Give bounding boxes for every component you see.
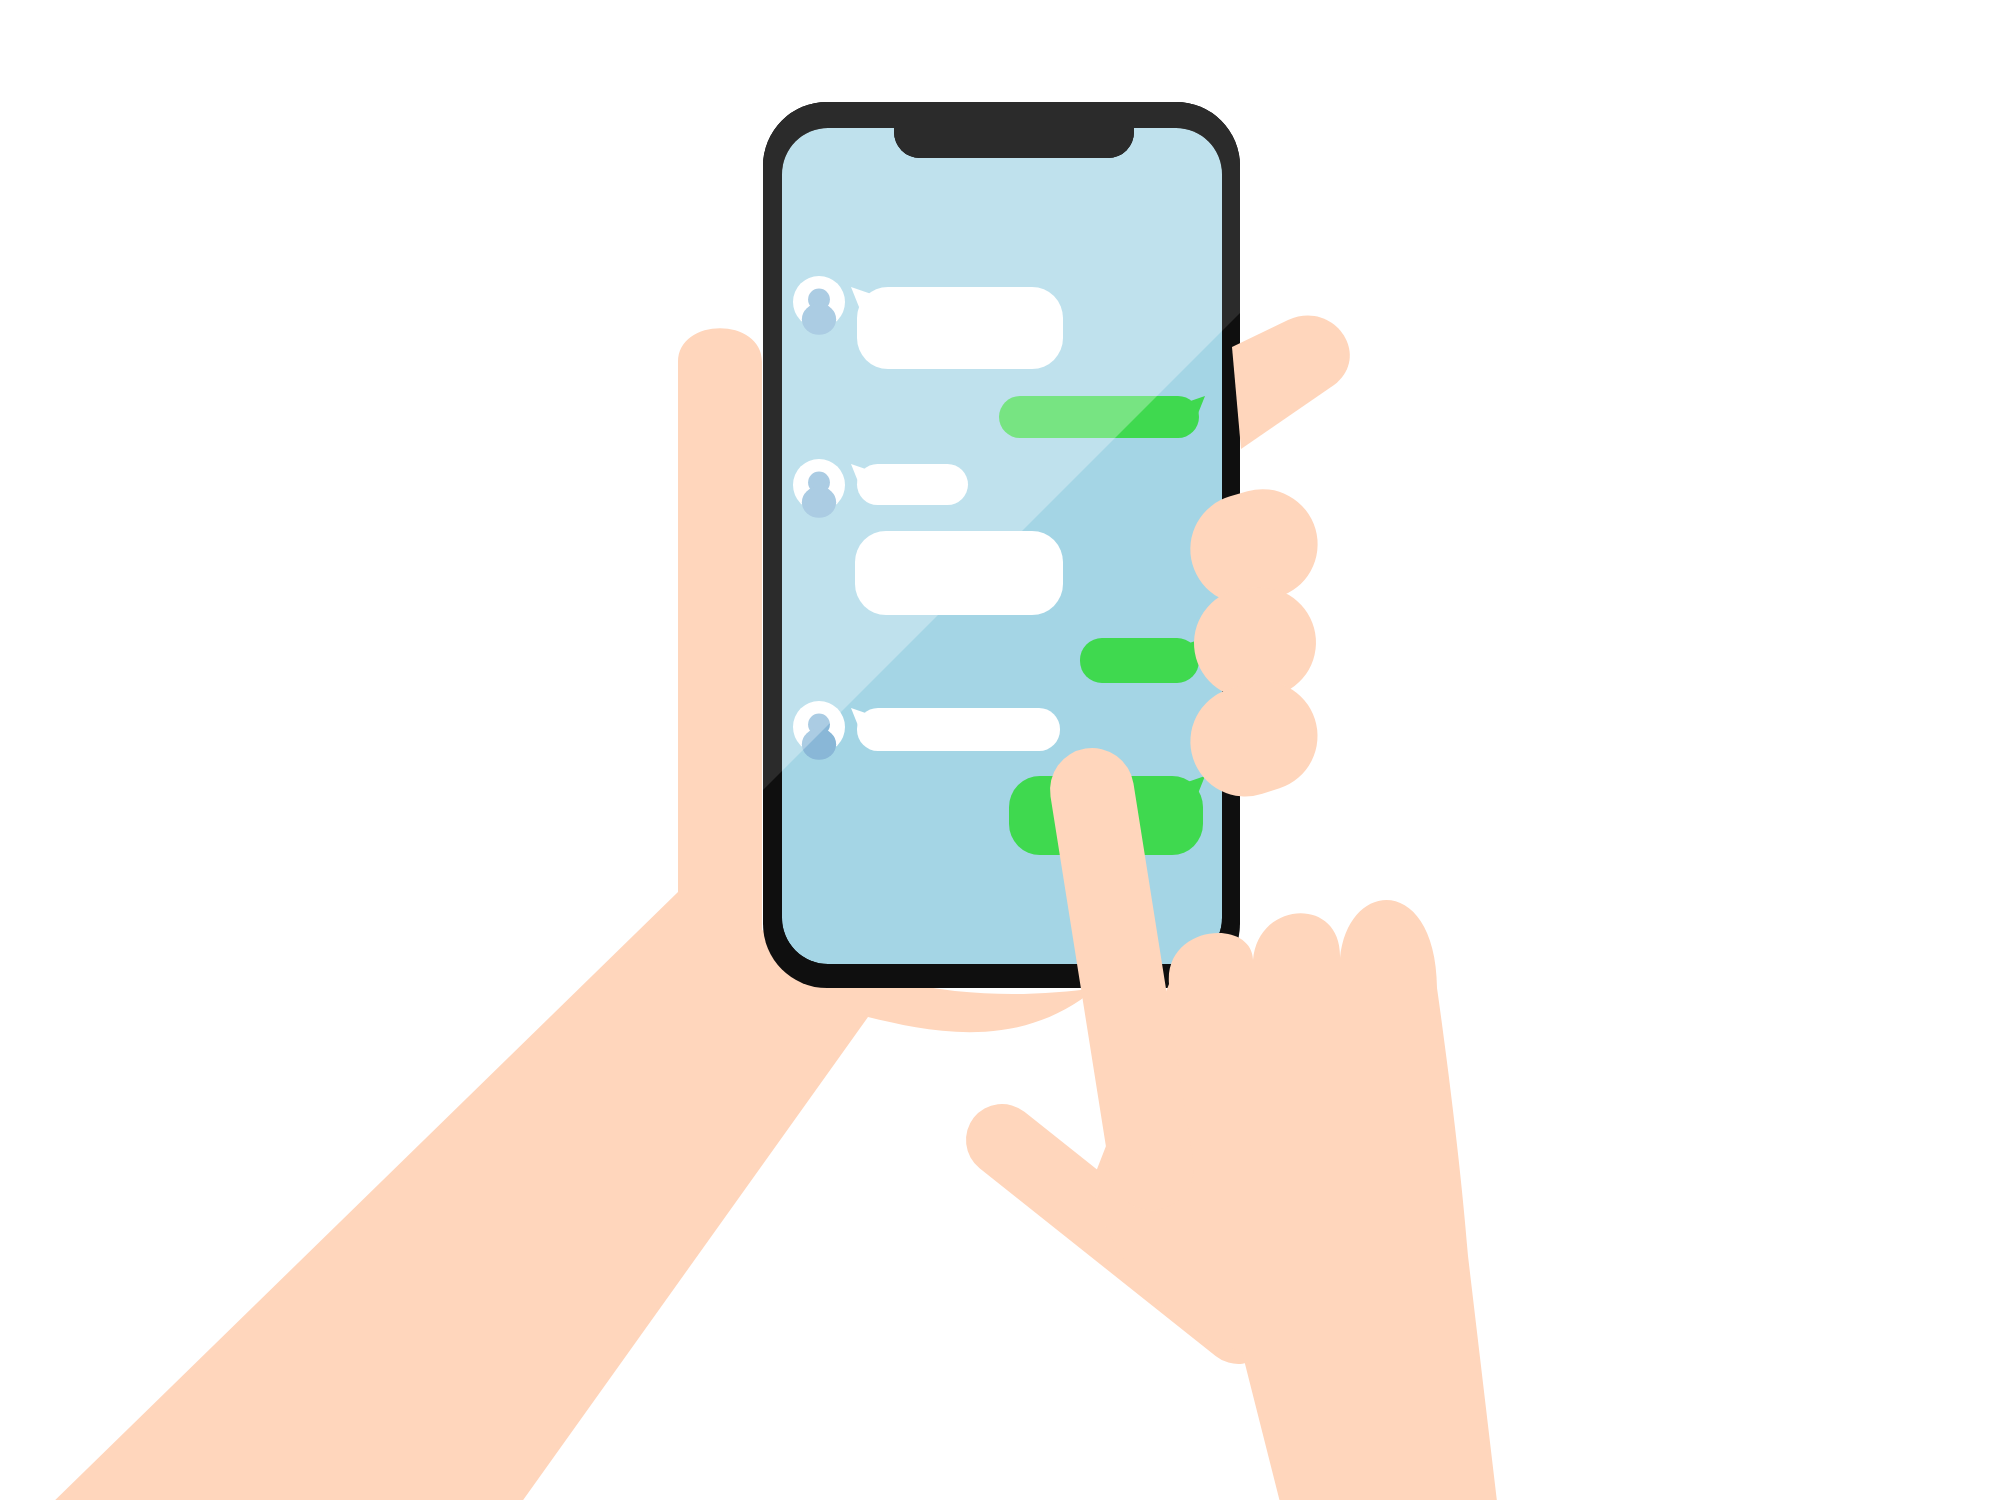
button[interactable]: Contact avatar — [794, 276, 846, 328]
button[interactable]: Message from contact — [855, 531, 1063, 615]
button[interactable]: Message from contact — [857, 464, 968, 505]
button[interactable]: Message you sent — [999, 396, 1199, 438]
button[interactable]: Contact avatar — [794, 701, 846, 753]
button[interactable]: Message from contact — [857, 287, 1063, 369]
button[interactable]: Message from contact — [857, 708, 1060, 751]
button[interactable]: Message you sent — [1080, 638, 1199, 683]
button[interactable]: Contact avatar — [794, 459, 846, 511]
button[interactable]: Message you sent — [1009, 776, 1203, 855]
